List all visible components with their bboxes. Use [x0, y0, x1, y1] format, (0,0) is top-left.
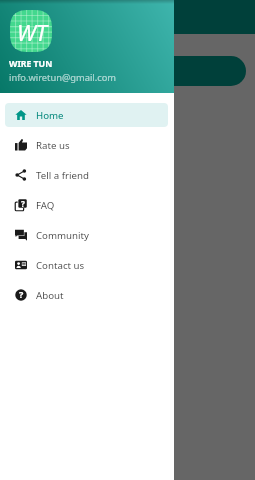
staticText: Tell a friend	[36, 169, 89, 182]
staticText: WIRE TUN	[9, 58, 53, 70]
staticText: info.wiretun@gmail.com	[9, 71, 116, 84]
staticText: ?	[21, 198, 25, 209]
button[interactable]: Close navigation drawer	[0, 0, 255, 480]
staticText: Home	[36, 109, 64, 122]
button[interactable]: ?	[5, 193, 168, 217]
staticText: WT	[17, 17, 47, 47]
button[interactable]: Contact us	[5, 253, 168, 277]
staticText: About	[36, 289, 64, 302]
button[interactable]: Home	[5, 103, 168, 127]
button[interactable]: ?	[5, 283, 168, 307]
staticText: FAQ	[36, 199, 55, 212]
staticText: ?	[19, 288, 24, 300]
button[interactable]: Open navigation drawer	[0, 0, 255, 34]
button[interactable]: Connect	[8, 56, 246, 86]
staticText: Community	[36, 229, 90, 242]
button[interactable]: Rate us	[5, 133, 168, 157]
button[interactable]: Community	[5, 223, 168, 247]
staticText: Rate us	[36, 139, 70, 152]
staticText: Contact us	[36, 259, 85, 272]
button[interactable]: Tell a friend	[5, 163, 168, 187]
